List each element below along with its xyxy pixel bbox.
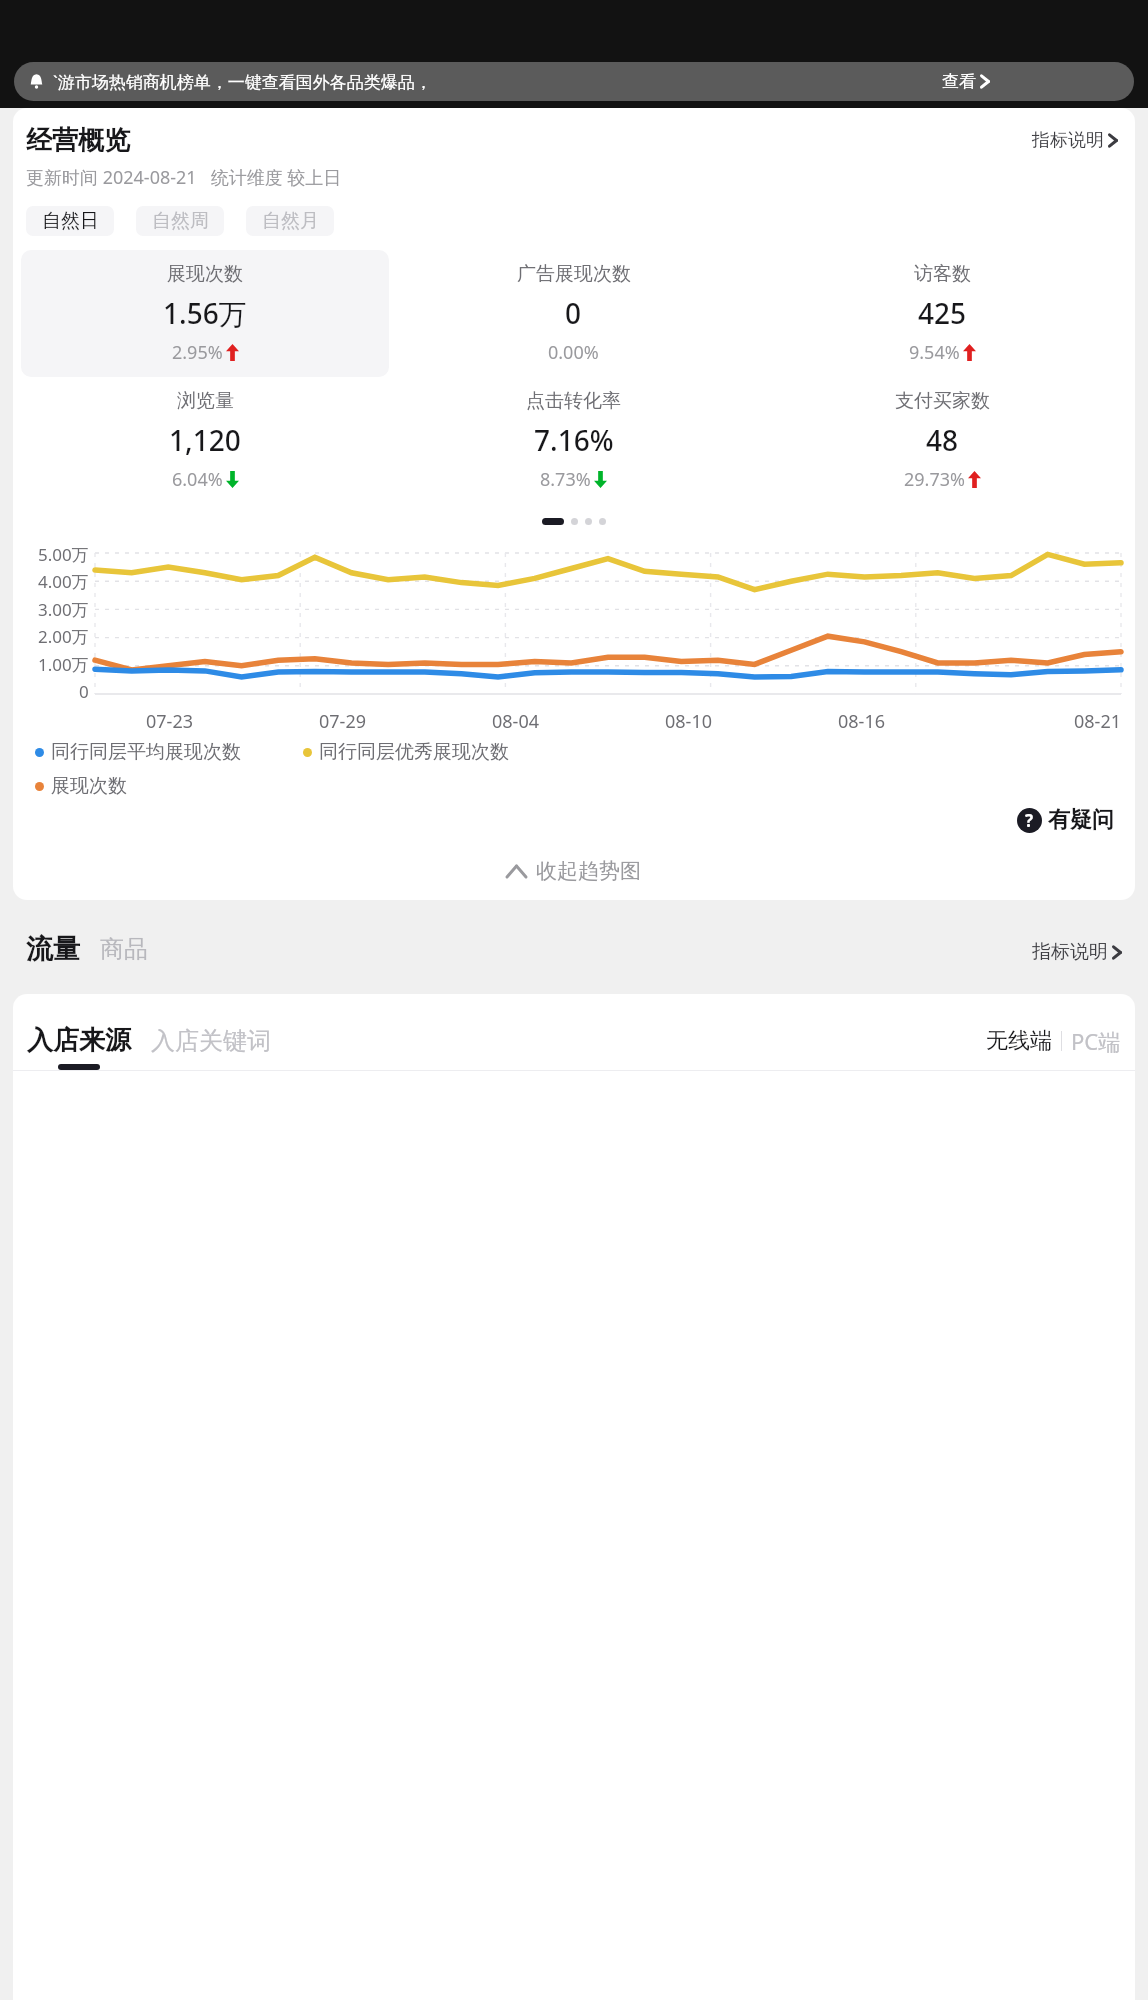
staticText: 同行同层平均展现次数 bbox=[51, 740, 241, 764]
staticText: 07-29 bbox=[256, 709, 429, 734]
staticText: 08-21 bbox=[948, 709, 1121, 734]
staticText: 点击转化率 bbox=[526, 389, 621, 413]
staticText: 6.04% bbox=[172, 467, 223, 492]
staticText: 浏览量 bbox=[177, 389, 234, 413]
staticText: 有疑问 bbox=[1048, 806, 1114, 834]
staticText: 1.00万 bbox=[38, 653, 89, 676]
staticText: PC端 bbox=[1071, 1026, 1121, 1056]
staticText: 7.16% bbox=[534, 421, 614, 459]
staticText: 08-16 bbox=[775, 709, 948, 734]
staticText: 08-04 bbox=[429, 709, 602, 734]
button[interactable]: 浏览量 bbox=[21, 377, 389, 504]
staticText: 展现次数 bbox=[167, 262, 243, 286]
staticText: ? bbox=[1025, 809, 1034, 832]
button[interactable]: 自然日 bbox=[26, 206, 114, 236]
staticText: 2.00万 bbox=[38, 625, 89, 648]
staticText: 3.00万 bbox=[38, 598, 89, 621]
button[interactable]: 商品 bbox=[100, 934, 148, 966]
button[interactable]: 收起趋势图 bbox=[13, 848, 1135, 894]
button[interactable]: 入店来源 bbox=[27, 1024, 131, 1070]
staticText: 1,120 bbox=[169, 421, 241, 459]
staticText: 广告展现次数 bbox=[517, 262, 631, 286]
staticText: 自然日 bbox=[42, 209, 99, 233]
staticText: 自然周 bbox=[152, 209, 209, 233]
button[interactable]: 访客数 bbox=[758, 250, 1127, 377]
button[interactable]: 流量 bbox=[26, 932, 80, 966]
staticText: 2.95% bbox=[172, 340, 223, 365]
button[interactable]: 点击转化率 bbox=[389, 377, 758, 504]
staticText: ˋ游市场热销商机榜单，一键查看国外各品类爆品， bbox=[53, 70, 432, 93]
button[interactable]: 无线端 bbox=[986, 1027, 1052, 1055]
staticText: 访客数 bbox=[914, 262, 971, 286]
staticText: 1.56万 bbox=[163, 294, 247, 332]
button[interactable]: 指标说明 bbox=[1028, 125, 1122, 156]
button[interactable]: 指标说明 bbox=[1032, 940, 1122, 966]
staticText: 流量 bbox=[26, 932, 80, 966]
staticText: 指标说明 bbox=[1032, 129, 1104, 152]
button[interactable]: 展现次数 bbox=[21, 250, 389, 377]
staticText: 入店关键词 bbox=[151, 1026, 271, 1056]
staticText: 29.73% bbox=[904, 467, 965, 492]
staticText: 更新时间 2024-08-21 统计维度 较上日 bbox=[26, 165, 342, 190]
staticText: 425 bbox=[918, 294, 967, 332]
button[interactable]: ? bbox=[1013, 802, 1118, 838]
staticText: 5.00万 bbox=[38, 543, 89, 566]
button[interactable]: 自然周 bbox=[136, 206, 224, 236]
staticText: 4.00万 bbox=[38, 570, 89, 593]
staticText: 自然月 bbox=[262, 209, 319, 233]
staticText: 无线端 bbox=[986, 1027, 1052, 1055]
staticText: 经营概览 bbox=[26, 124, 130, 157]
button[interactable]: ˋ游市场热销商机榜单，一键查看国外各品类爆品， bbox=[14, 62, 1134, 101]
button[interactable]: 广告展现次数 bbox=[389, 250, 758, 377]
staticText: 展现次数 bbox=[51, 774, 127, 798]
staticText: 8.73% bbox=[540, 467, 591, 492]
button[interactable]: 入店关键词 bbox=[151, 1026, 271, 1069]
staticText: 07-23 bbox=[83, 709, 256, 734]
staticText: 0.00% bbox=[548, 340, 599, 365]
staticText: 同行同层优秀展现次数 bbox=[319, 740, 509, 764]
staticText: 收起趋势图 bbox=[536, 858, 641, 884]
staticText: 9.54% bbox=[909, 340, 960, 365]
staticText: 48 bbox=[926, 421, 959, 459]
staticText: 商品 bbox=[100, 934, 148, 964]
staticText: 08-10 bbox=[602, 709, 775, 734]
staticText: 入店来源 bbox=[27, 1024, 131, 1057]
staticText: 0 bbox=[79, 680, 89, 703]
staticText: 0 bbox=[565, 294, 582, 332]
staticText: 查看 bbox=[942, 71, 976, 92]
button[interactable]: 自然月 bbox=[246, 206, 334, 236]
button[interactable]: PC端 bbox=[1071, 1026, 1121, 1056]
staticText: 指标说明 bbox=[1032, 940, 1108, 964]
button[interactable]: 支付买家数 bbox=[758, 377, 1127, 504]
staticText: 支付买家数 bbox=[895, 389, 990, 413]
